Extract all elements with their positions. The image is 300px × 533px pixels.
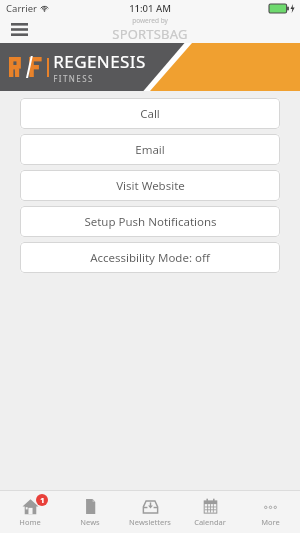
button[interactable]: Email: [20, 134, 280, 165]
staticText: Email: [135, 142, 165, 158]
staticText: SPORTSBAG: [112, 25, 188, 43]
button[interactable]: Newsletters: [120, 491, 180, 533]
button[interactable]: Accessibility Mode: off: [20, 242, 280, 273]
button[interactable]: Menu: [4, 16, 34, 43]
staticText: Newsletters: [129, 517, 171, 527]
button[interactable]: More: [240, 491, 300, 533]
button[interactable]: Visit Website: [20, 170, 280, 201]
staticText: FITNESS: [53, 73, 94, 84]
button[interactable]: News: [60, 491, 120, 533]
staticText: Calendar: [194, 517, 226, 527]
staticText: REGENESIS: [53, 50, 146, 73]
staticText: Accessibility Mode: off: [90, 250, 210, 266]
staticText: Home: [19, 517, 41, 527]
staticText: Visit Website: [116, 178, 185, 194]
staticText: Setup Push Notifications: [84, 214, 217, 230]
staticText: Call: [140, 106, 160, 122]
staticText: Carrier: [6, 2, 37, 15]
staticText: 1: [40, 495, 45, 505]
staticText: powered by: [132, 16, 168, 25]
button[interactable]: Calendar: [180, 491, 240, 533]
button[interactable]: Call: [20, 98, 280, 129]
button[interactable]: 1: [0, 491, 60, 533]
staticText: More: [261, 517, 280, 527]
staticText: 11:01 AM: [129, 2, 171, 15]
staticText: News: [80, 517, 100, 527]
button[interactable]: Setup Push Notifications: [20, 206, 280, 237]
